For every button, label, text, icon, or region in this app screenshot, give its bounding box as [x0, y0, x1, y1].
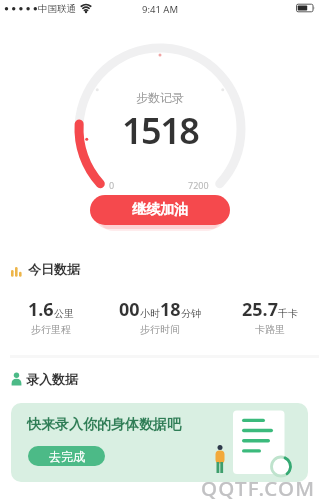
staticText: 中国联通 [38, 3, 76, 15]
staticText: 千卡 [278, 307, 298, 320]
staticText: 25.7 [242, 297, 278, 322]
button[interactable]: 去完成 [28, 446, 105, 466]
staticText: 快来录入你的身体数据吧 [27, 416, 181, 434]
staticText: 分钟 [181, 307, 201, 320]
staticText: 步行时间 [140, 323, 180, 336]
button[interactable]: 快来录入你的身体数据吧 [11, 403, 308, 482]
staticText: 00 [119, 297, 140, 322]
staticText: 公里 [54, 307, 74, 320]
button[interactable]: 1.6 [1, 297, 101, 336]
staticText: 今日数据 [28, 261, 80, 277]
staticText: 步行里程 [31, 323, 71, 336]
staticText: 录入数据 [26, 371, 78, 387]
button[interactable]: 继续加油 [90, 195, 230, 225]
staticText: 步数记录 [136, 90, 184, 105]
button[interactable]: 25.7 [220, 297, 319, 336]
staticText: 9:41 AM [142, 3, 179, 16]
staticText: 7200 [188, 179, 209, 191]
staticText: QQTF.COM [201, 474, 316, 502]
staticText: 继续加油 [132, 201, 188, 219]
staticText: 卡路里 [255, 323, 285, 336]
staticText: 0 [109, 179, 115, 191]
staticText: 18 [160, 297, 181, 322]
staticText: 去完成 [49, 449, 85, 464]
staticText: 小时 [140, 307, 160, 320]
staticText: 1518 [122, 106, 199, 150]
button[interactable]: 00 [110, 297, 210, 336]
staticText: 1.6 [28, 297, 54, 322]
